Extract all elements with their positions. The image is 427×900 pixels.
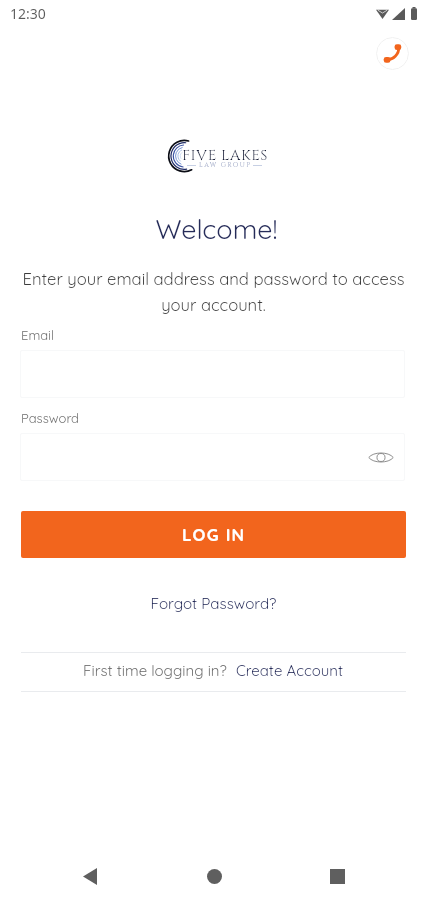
button[interactable]: Create Account	[236, 661, 344, 680]
button[interactable]: Forgot Password?	[0, 594, 427, 613]
button[interactable]: Show password	[20, 433, 405, 481]
staticText: 12:30	[10, 4, 46, 23]
button[interactable]: Recent apps	[313, 852, 361, 900]
staticText: LAW GROUP	[199, 161, 252, 170]
button[interactable]: Home	[190, 852, 238, 900]
button[interactable]: LOG IN	[21, 511, 406, 558]
staticText: Email	[21, 327, 54, 343]
staticText: Password	[21, 410, 79, 426]
staticText: Enter your email address and password to…	[20, 268, 407, 315]
button[interactable]: Back	[66, 852, 114, 900]
button[interactable]: Show password	[367, 444, 394, 471]
staticText: Welcome!	[3, 212, 427, 246]
staticText: LOG IN	[182, 524, 246, 545]
staticText: FIVE LAKES	[182, 145, 268, 165]
button[interactable]: Call us	[376, 37, 409, 70]
staticText: First time logging in?	[83, 661, 227, 680]
